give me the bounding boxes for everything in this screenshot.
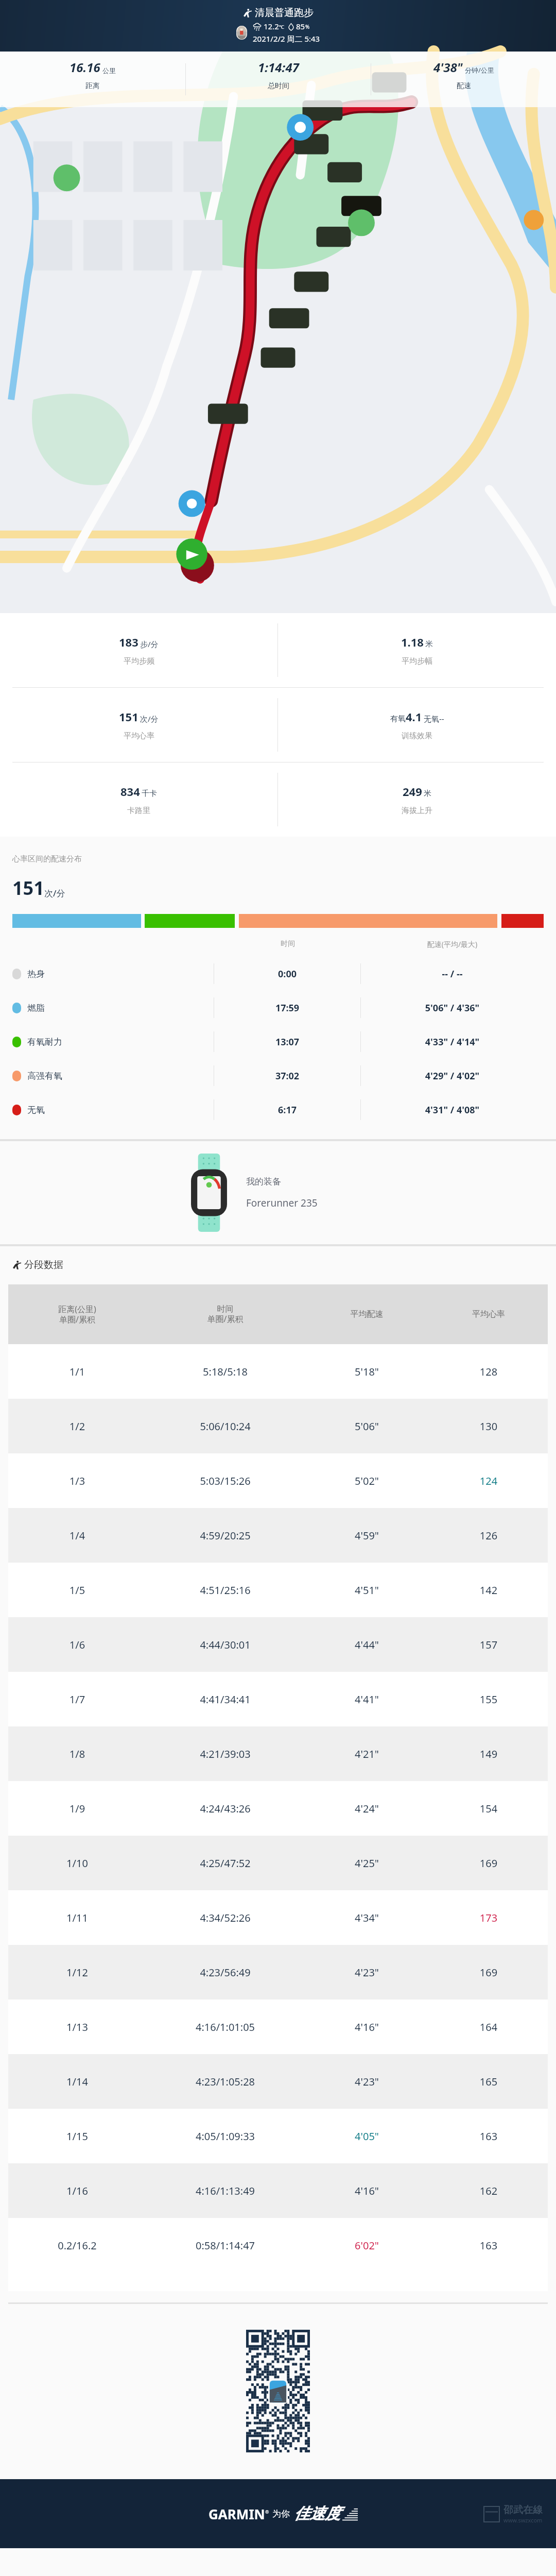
button[interactable]: 1/9 — [8, 1781, 548, 1836]
staticText: 1/5 — [8, 1583, 146, 1597]
staticText: 次/分 — [44, 887, 65, 899]
staticText: 1/3 — [8, 1474, 146, 1488]
staticText: 165 — [429, 2075, 548, 2089]
staticText: 4:16/1:01:05 — [146, 2020, 304, 2034]
staticText: 1/10 — [8, 1856, 146, 1870]
staticText: 4'44" — [304, 1638, 429, 1652]
button[interactable]: 1/11 — [8, 1890, 548, 1945]
button[interactable]: 1/13 — [8, 1999, 548, 2054]
staticText: -- / -- — [361, 968, 544, 980]
button[interactable]: 1/3 — [8, 1453, 548, 1508]
staticText: 高强有氧 — [27, 1071, 62, 1081]
staticText: 4'05" — [304, 2129, 429, 2143]
staticText: 为你 — [272, 2509, 290, 2519]
staticText: 1.18 — [401, 634, 424, 650]
staticText: 心率区间的配速分布 — [12, 854, 82, 864]
staticText: 4.1 — [406, 709, 422, 724]
staticText: 85 — [296, 21, 305, 31]
staticText: 清晨普通跑步 — [255, 7, 314, 19]
button[interactable]: 0.2/16.2 — [8, 2218, 548, 2273]
staticText: 12.2 — [264, 21, 279, 31]
staticText: 6:17 — [214, 1104, 360, 1116]
staticText: 1/14 — [8, 2075, 146, 2089]
staticText: 126 — [429, 1529, 548, 1543]
staticText: 4:51/25:16 — [146, 1583, 304, 1597]
staticText: 平均步幅 — [402, 656, 432, 666]
staticText: 4:21/39:03 — [146, 1747, 304, 1761]
staticText: 时间 单圈/累积 — [146, 1304, 304, 1325]
staticText: 4'29" / 4'02" — [361, 1070, 544, 1082]
staticText: 我的装备 — [246, 1176, 281, 1187]
staticText: 1/4 — [8, 1529, 146, 1543]
button[interactable]: 1/7 — [8, 1672, 548, 1726]
staticText: GARMIN — [208, 2505, 265, 2523]
staticText: 次/分 — [140, 714, 159, 724]
button[interactable]: 1/8 — [8, 1726, 548, 1781]
staticText: 173 — [429, 1911, 548, 1925]
staticText: 5:03/15:26 — [146, 1474, 304, 1488]
staticText: 0.2/16.2 — [8, 2239, 146, 2252]
staticText: 164 — [429, 2020, 548, 2034]
staticText: 5'06" — [304, 1419, 429, 1433]
staticText: 4:44/30:01 — [146, 1638, 304, 1652]
staticText: www.swzxcom — [503, 2516, 543, 2524]
staticText: 13:07 — [214, 1036, 360, 1048]
staticText: 4'21" — [304, 1747, 429, 1761]
staticText: 海拔上升 — [402, 806, 432, 816]
staticText: 154 — [429, 1802, 548, 1816]
staticText: 16.16 — [69, 59, 100, 76]
staticText: 163 — [429, 2239, 548, 2252]
button[interactable]: 燃脂 — [12, 991, 544, 1025]
button[interactable]: 有氧耐力 — [12, 1025, 544, 1059]
button[interactable]: 1/5 — [8, 1563, 548, 1617]
staticText: 分钟/公里 — [465, 65, 494, 75]
staticText: 4'34" — [304, 1911, 429, 1925]
staticText: 128 — [429, 1365, 548, 1379]
staticText: 155 — [429, 1692, 548, 1706]
staticText: 4:25/47:52 — [146, 1856, 304, 1870]
staticText: 169 — [429, 1856, 548, 1870]
staticText: 邵武在線 — [503, 2504, 543, 2516]
staticText: 平均心率 — [429, 1309, 548, 1319]
staticText: 151 — [12, 875, 44, 901]
staticText: 4'51" — [304, 1583, 429, 1597]
staticText: 1/12 — [8, 1965, 146, 1979]
staticText: 平均步频 — [124, 656, 154, 666]
staticText: 1/2 — [8, 1419, 146, 1433]
staticText: 配速 — [457, 81, 471, 91]
button[interactable]: 1/12 — [8, 1945, 548, 1999]
button[interactable]: 1/4 — [8, 1508, 548, 1563]
staticText: 千卡 — [142, 789, 157, 799]
button[interactable]: 1/14 — [8, 2054, 548, 2109]
staticText: 4'38" — [433, 59, 463, 76]
staticText: 米 — [425, 639, 433, 649]
staticText: 有氧 — [390, 714, 406, 724]
button[interactable]: 热身 — [12, 957, 544, 991]
button[interactable]: 无氧 — [12, 1093, 544, 1127]
button[interactable]: 1/10 — [8, 1836, 548, 1890]
staticText: 124 — [429, 1474, 548, 1488]
button[interactable]: 高强有氧 — [12, 1059, 544, 1093]
staticText: 1/15 — [8, 2129, 146, 2143]
staticText: 米 — [424, 789, 431, 799]
staticText: 157 — [429, 1638, 548, 1652]
staticText: 4'41" — [304, 1692, 429, 1706]
staticText: ® — [265, 2509, 269, 2515]
staticText: 总时间 — [268, 81, 289, 91]
button[interactable]: 1/15 — [8, 2109, 548, 2163]
staticText: 4:23/1:05:28 — [146, 2075, 304, 2089]
staticText: 4'31" / 4'08" — [361, 1104, 544, 1116]
button[interactable]: 1/2 — [8, 1399, 548, 1453]
staticText: 距离(公里) 单圈/累积 — [8, 1303, 146, 1325]
staticText: 时间 — [215, 939, 361, 948]
button[interactable]: 1/1 — [8, 1344, 548, 1399]
staticText: 4'25" — [304, 1856, 429, 1870]
staticText: 162 — [429, 2184, 548, 2198]
staticText: 步/分 — [140, 639, 159, 649]
button[interactable]: 1/6 — [8, 1617, 548, 1672]
staticText: 4'16" — [304, 2020, 429, 2034]
button[interactable]: 1/16 — [8, 2163, 548, 2218]
button[interactable]: 我的装备 — [0, 1141, 556, 1244]
staticText: 130 — [429, 1419, 548, 1433]
staticText: 0:00 — [214, 968, 360, 980]
